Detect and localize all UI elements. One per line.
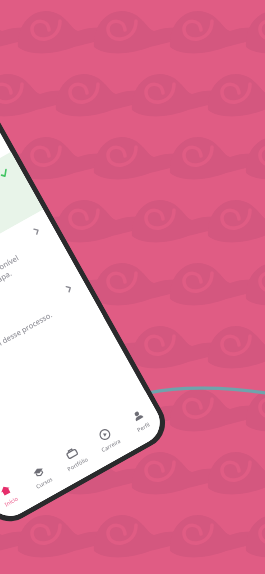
button[interactable]: Perfil [112, 391, 168, 449]
staticText: Carreira [100, 437, 122, 453]
button[interactable]: Cursos [13, 447, 68, 505]
staticText: Cursos [34, 475, 54, 490]
button[interactable]: Início [0, 465, 35, 524]
staticText: Portfólio [66, 455, 89, 472]
staticText: Perfil [136, 420, 151, 433]
staticText: Realize o projeto final desse processo. [0, 309, 54, 384]
button[interactable]: Feedback da etapa [0, 209, 76, 360]
staticText: você poderá visualizar esta etapa. [0, 268, 13, 335]
button[interactable]: Carreira [79, 409, 134, 468]
button[interactable]: Projeto Final [0, 267, 103, 409]
staticText: Quando o feedback estiver disponível [0, 252, 21, 326]
button[interactable]: Experiência em sala de aula [0, 152, 43, 302]
staticText: Início [3, 494, 20, 507]
button[interactable]: Portfólio [46, 428, 101, 487]
